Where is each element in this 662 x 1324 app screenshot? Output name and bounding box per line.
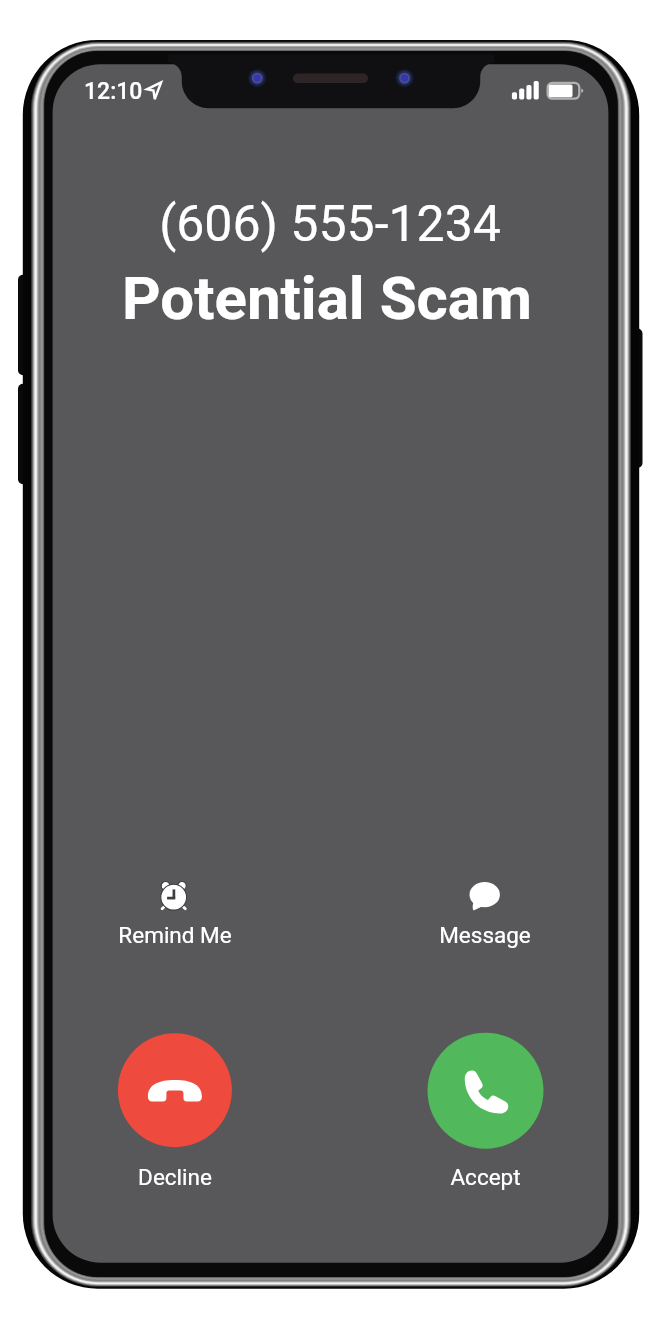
button[interactable]: Remind Me	[100, 921, 249, 949]
staticText: (606) 555-1234	[159, 195, 501, 254]
button[interactable]: Decline	[100, 1163, 249, 1191]
staticText: 12:10	[84, 78, 143, 105]
button[interactable]: Message	[410, 921, 559, 949]
staticText: Decline	[138, 1164, 212, 1190]
staticText: Message	[439, 922, 531, 948]
staticText: Remind Me	[118, 922, 232, 948]
button[interactable]: Accept	[411, 1163, 560, 1191]
staticText: Potential Scam	[122, 263, 532, 333]
staticText: Accept	[450, 1164, 521, 1190]
